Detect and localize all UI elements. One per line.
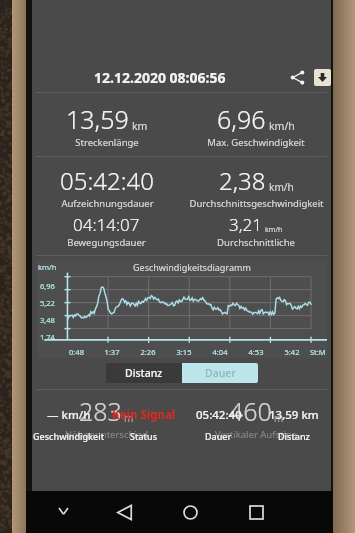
staticText: m bbox=[274, 411, 284, 425]
staticText: 4:04 bbox=[202, 347, 238, 357]
staticText: Max. Geschwindigkeit bbox=[207, 136, 305, 149]
staticText: 4:53 bbox=[238, 347, 274, 357]
staticText: 6,96 bbox=[217, 102, 266, 136]
staticText: 1:37 bbox=[94, 347, 130, 357]
button[interactable]: Speichern bbox=[314, 69, 331, 86]
staticText: 3,48 bbox=[40, 315, 55, 325]
staticText: 5,22 bbox=[40, 298, 55, 308]
staticText: 05:42:40 bbox=[196, 407, 242, 423]
staticText: Streckenlänge bbox=[75, 136, 139, 149]
staticText: 1,74 bbox=[40, 332, 55, 341]
staticText: — km/h bbox=[47, 407, 91, 423]
staticText: Distanz bbox=[278, 430, 310, 442]
staticText: 283 bbox=[79, 394, 122, 428]
staticText: Geschwindigkeit bbox=[33, 430, 105, 442]
staticText: Status bbox=[130, 430, 158, 442]
staticText: Durchschnittsgeschwindigkeit bbox=[189, 197, 324, 210]
staticText: Bewegungsdauer bbox=[67, 236, 146, 249]
staticText: St:M bbox=[310, 347, 326, 357]
staticText: 460 bbox=[229, 394, 272, 428]
staticText: km bbox=[132, 119, 148, 133]
staticText: m bbox=[124, 411, 134, 425]
button[interactable]: Zurück bbox=[105, 493, 143, 531]
staticText: 6,96 bbox=[40, 281, 55, 291]
staticText: km/h bbox=[269, 180, 294, 194]
button[interactable]: Distanz bbox=[106, 363, 182, 383]
staticText: Vertikaler Aufstieg bbox=[215, 428, 298, 441]
button[interactable]: Tastatur ausblenden bbox=[48, 497, 78, 527]
staticText: Kein Signal bbox=[112, 407, 176, 423]
button[interactable]: Startbildschirm bbox=[171, 493, 209, 531]
button[interactable]: Dauer bbox=[182, 363, 258, 383]
button[interactable]: 13,59 km bbox=[256, 407, 331, 442]
staticText: 13,59 km bbox=[269, 407, 319, 423]
staticText: Durchschnittliche Bewegungsgeschwin… bbox=[181, 236, 331, 249]
button[interactable]: — km/h bbox=[32, 407, 106, 442]
staticText: 3,21 bbox=[229, 213, 262, 236]
staticText: 04:14:07 bbox=[73, 213, 140, 236]
staticText: 3:15 bbox=[166, 347, 202, 357]
staticText: km/h bbox=[38, 262, 57, 272]
staticText: 0:48 bbox=[59, 347, 94, 357]
staticText: Distanz bbox=[125, 366, 163, 380]
staticText: 12.12.2020 08:06:56 bbox=[94, 68, 226, 87]
staticText: Dauer bbox=[205, 366, 236, 380]
staticText: 2:26 bbox=[130, 347, 166, 357]
button[interactable]: 05:42:40 bbox=[181, 407, 256, 442]
staticText: 05:42:40 bbox=[60, 164, 154, 197]
staticText: Dauer bbox=[205, 430, 232, 442]
button[interactable]: Übersicht bbox=[237, 493, 275, 531]
staticText: 2,38 bbox=[219, 164, 266, 197]
staticText: km/h bbox=[265, 224, 283, 234]
staticText: Höhenunterschied bbox=[65, 428, 148, 441]
staticText: 5:42 bbox=[274, 347, 310, 357]
button[interactable]: Teilen bbox=[284, 64, 310, 90]
staticText: 13,59 bbox=[66, 102, 129, 136]
staticText: km/h bbox=[269, 119, 295, 133]
staticText: Geschwindigkeitsdiagramm bbox=[133, 261, 251, 273]
button[interactable]: Kein Signal bbox=[106, 407, 181, 442]
staticText: Aufzeichnungsdauer bbox=[61, 197, 154, 210]
